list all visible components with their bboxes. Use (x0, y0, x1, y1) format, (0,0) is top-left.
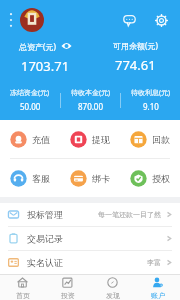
staticText: 李富 (147, 258, 161, 267)
staticText: 发现 (106, 291, 120, 300)
staticText: 9.10 (143, 101, 159, 112)
button[interactable]: Messages (120, 11, 138, 29)
button[interactable]: 客服 (0, 159, 60, 197)
button[interactable]: Menu (4, 5, 18, 35)
button[interactable]: 发现 (90, 275, 135, 300)
staticText: 50.00 (20, 101, 41, 112)
staticText: 充值 (32, 134, 50, 145)
staticText: 账户 (151, 291, 165, 300)
staticText: 回款 (152, 134, 170, 145)
button[interactable]: 绑卡 (60, 159, 120, 197)
button[interactable]: 首页 (0, 275, 45, 300)
staticText: 1703.71 (21, 57, 70, 75)
staticText: 774.61 (115, 56, 156, 74)
staticText: 每一笔还款一目了然 (98, 210, 161, 219)
button[interactable]: 回款 (120, 120, 180, 158)
button[interactable]: 投标管理 (0, 203, 180, 226)
staticText: 待收利息(元) (131, 88, 171, 98)
button[interactable]: 投资 (45, 275, 90, 300)
button[interactable]: Profile avatar (20, 8, 44, 32)
button[interactable]: 充值 (0, 120, 60, 158)
staticText: 授权 (152, 173, 170, 184)
staticText: 待收本金(元) (71, 88, 111, 98)
staticText: 可用余额(元) (113, 40, 158, 51)
button[interactable]: 提现 (60, 120, 120, 158)
button[interactable]: 账户 (135, 275, 180, 300)
button[interactable]: 授权 (120, 159, 180, 197)
staticText: 绑卡 (92, 173, 110, 184)
staticText: 实名认证 (27, 257, 63, 268)
staticText: 投标管理 (27, 209, 63, 220)
button[interactable]: 实名认证 (0, 251, 180, 274)
staticText: 首页 (16, 291, 30, 300)
button[interactable]: Settings (152, 11, 170, 29)
staticText: 提现 (92, 134, 110, 145)
staticText: 交易记录 (27, 233, 63, 244)
staticText: 冻结资金(元) (10, 88, 50, 98)
staticText: 投资 (61, 291, 75, 300)
staticText: 总资产(元) (19, 41, 56, 52)
button[interactable]: 交易记录 (0, 227, 180, 250)
staticText: 870.00 (78, 101, 104, 112)
button[interactable]: Toggle balance visibility (60, 40, 72, 52)
staticText: 客服 (32, 173, 50, 184)
